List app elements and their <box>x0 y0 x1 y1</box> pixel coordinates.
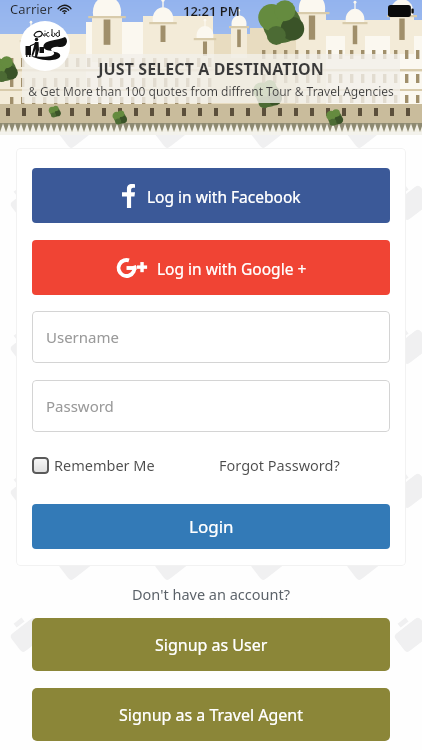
staticText: 12:21 PM <box>183 2 240 20</box>
button[interactable]: Remember Me <box>32 455 155 475</box>
button[interactable]: Username <box>32 311 390 363</box>
staticText: Don't have an account? <box>0 584 422 604</box>
staticText: Carrier <box>10 0 53 18</box>
button[interactable]: Log in with Google + <box>32 240 390 295</box>
button[interactable]: Qicab logo <box>20 21 70 71</box>
button[interactable]: Password <box>32 380 390 432</box>
staticText: Remember Me <box>54 455 155 475</box>
staticText: Signup as a Travel Agent <box>119 704 304 726</box>
staticText: Signup as User <box>155 634 268 656</box>
staticText: Login <box>189 515 234 538</box>
staticText: Password <box>46 396 114 416</box>
button[interactable]: Forgot Password? <box>219 455 340 475</box>
button[interactable]: Signup as a Travel Agent <box>32 688 390 741</box>
button[interactable]: Log in with Facebook <box>32 168 390 223</box>
staticText: Log in with Google + <box>157 258 307 279</box>
staticText: & Get More than 100 quotes from diffrent… <box>0 83 422 99</box>
staticText: Username <box>46 327 119 347</box>
staticText: JUST SELECT A DESTINATION <box>0 58 422 80</box>
staticText: Log in with Facebook <box>147 186 301 207</box>
button[interactable]: Login <box>32 504 390 549</box>
button[interactable]: Signup as User <box>32 618 390 671</box>
